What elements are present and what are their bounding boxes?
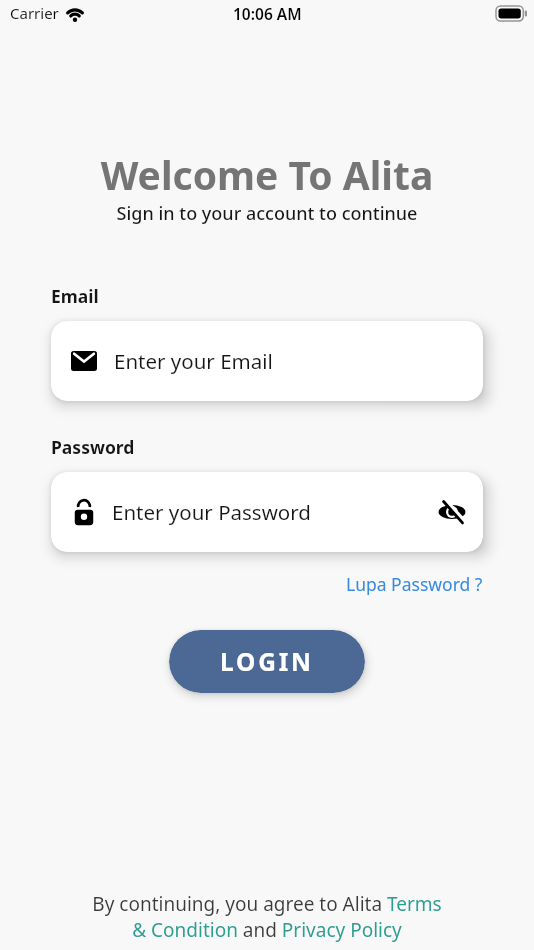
staticText: Sign in to your account to continue: [0, 201, 534, 226]
staticText: Carrier: [10, 3, 59, 23]
button[interactable]: Enter your Password: [51, 472, 483, 552]
button[interactable]: [438, 498, 466, 526]
staticText: LOGIN: [220, 645, 314, 678]
staticText: Email: [51, 284, 99, 308]
staticText: 10:06 AM: [233, 3, 302, 24]
button[interactable]: Enter your Email: [51, 321, 483, 401]
button[interactable]: & Condition and Privacy Policy: [0, 917, 534, 943]
button[interactable]: Lupa Password ?: [346, 572, 483, 596]
staticText: Enter your Email: [114, 347, 273, 375]
button[interactable]: LOGIN: [169, 630, 365, 693]
staticText: Password: [51, 435, 135, 459]
staticText: Enter your Password: [112, 498, 311, 526]
staticText: By continuing, you agree to Alita Terms: [0, 891, 534, 917]
staticText: Welcome To Alita: [0, 148, 534, 201]
